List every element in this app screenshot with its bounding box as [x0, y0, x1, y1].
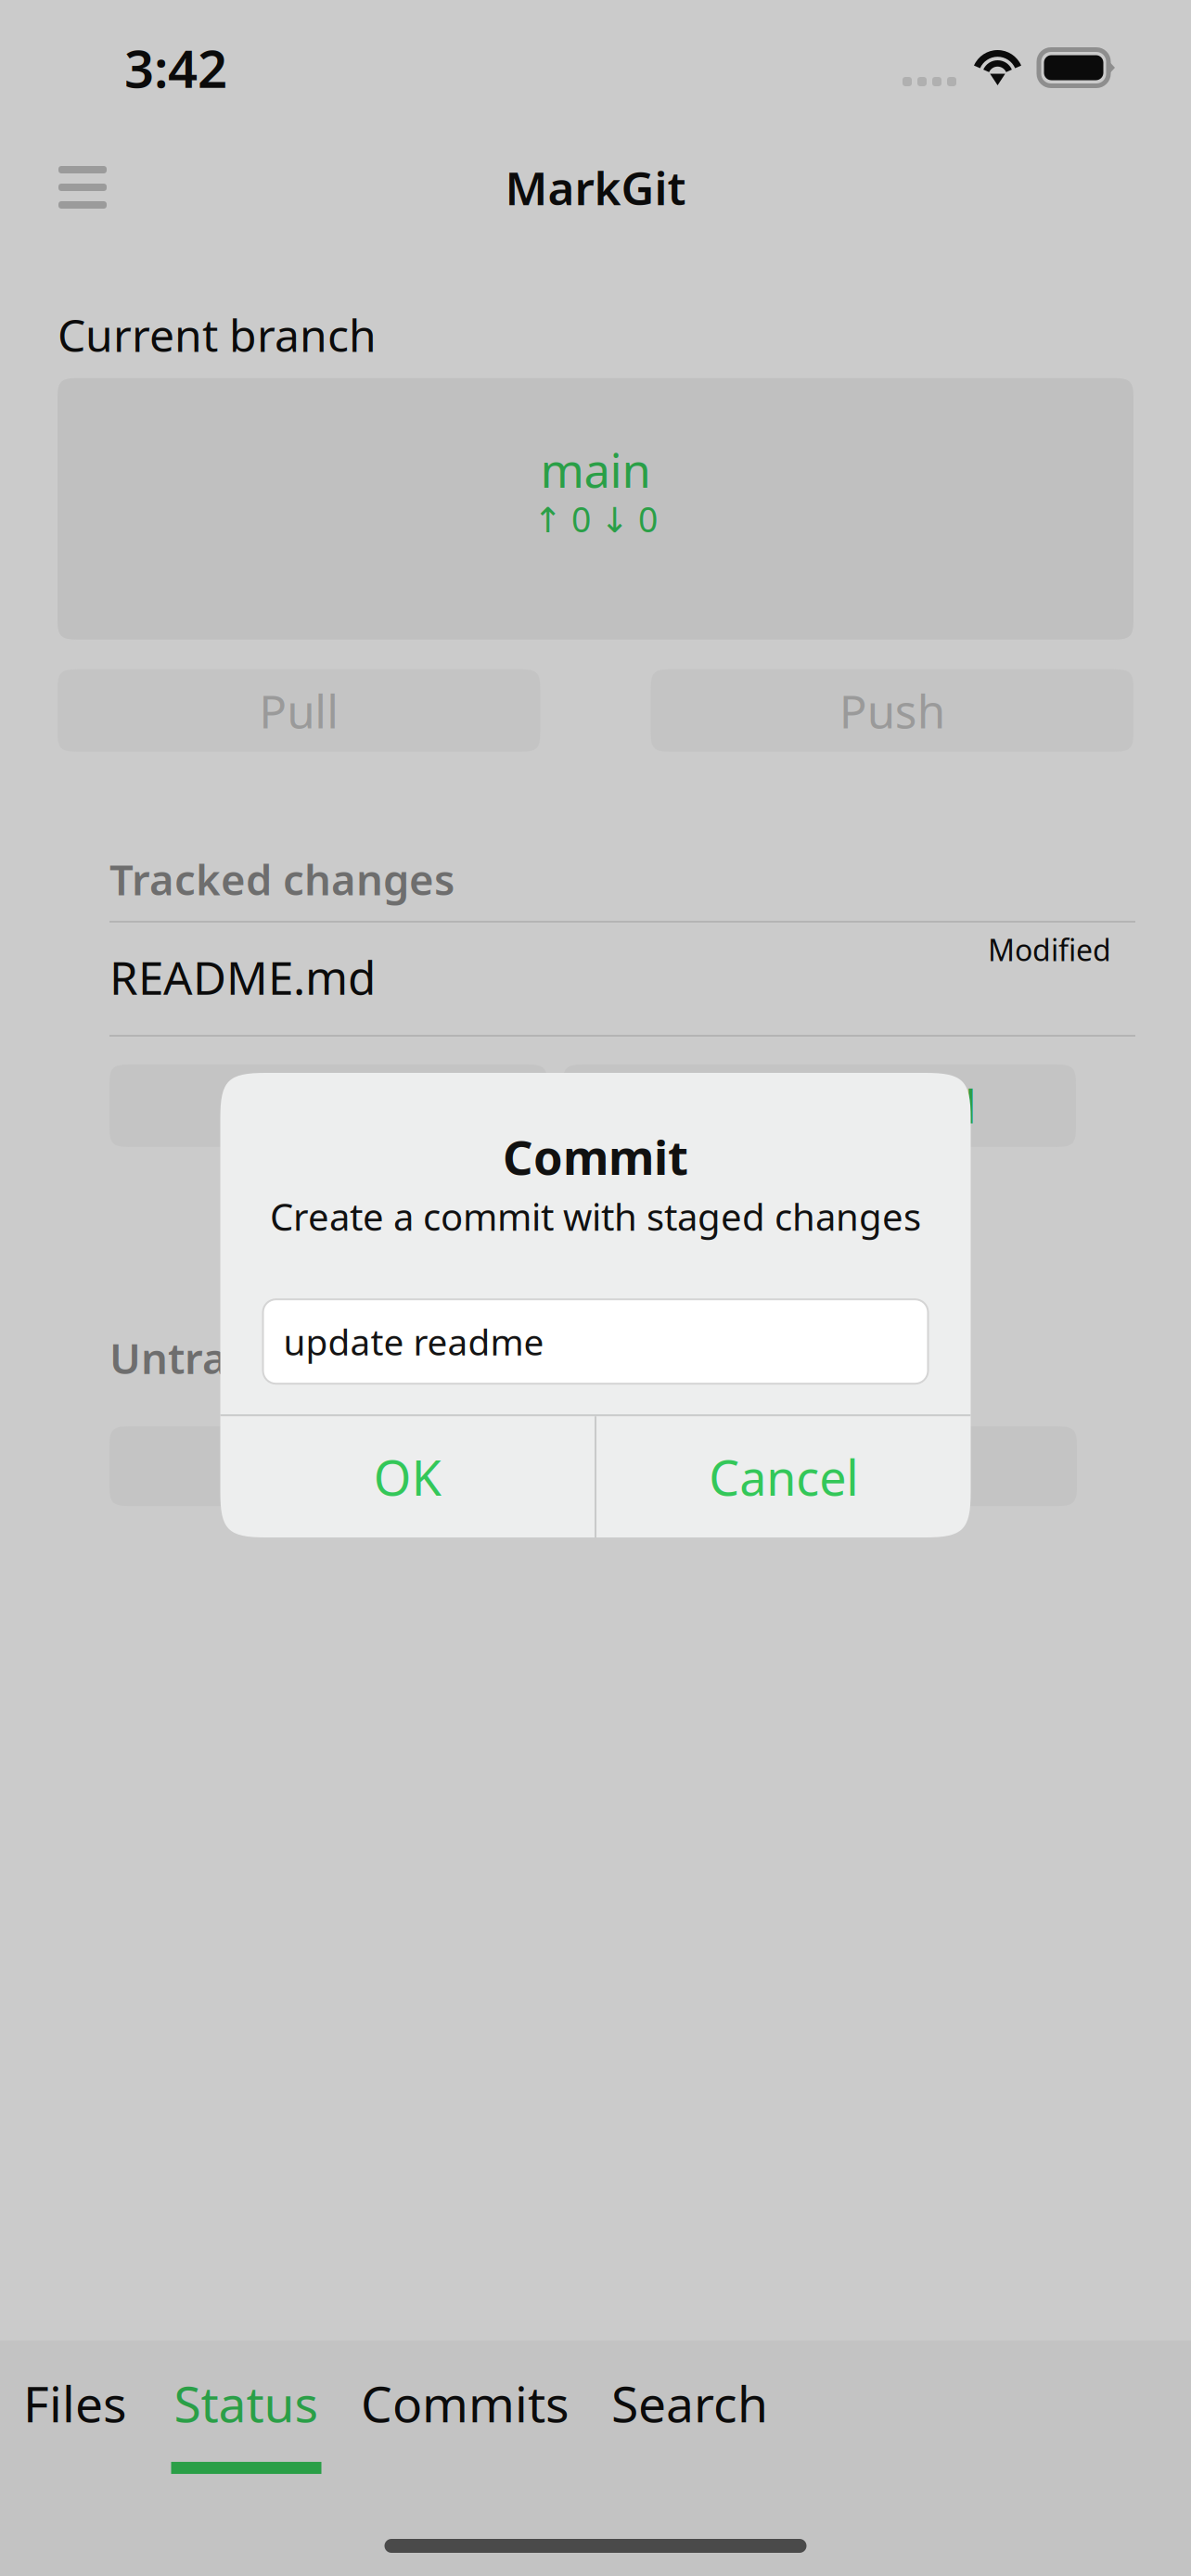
button[interactable]: main: [58, 378, 1133, 640]
staticText: ↑ 0 ↓ 0: [533, 496, 658, 542]
staticText: Files: [23, 2370, 127, 2436]
button[interactable]: Search: [588, 2340, 791, 2478]
staticText: Commits: [361, 2370, 570, 2436]
button[interactable]: Commit all: [563, 1064, 1076, 1147]
staticText: Cancel: [709, 1445, 858, 1509]
staticText: Push: [839, 680, 945, 741]
button[interactable]: Add all untracked files: [109, 1426, 1077, 1506]
staticText: OK: [374, 1445, 441, 1509]
staticText: README.md: [109, 947, 376, 1007]
staticText: MarkGit: [505, 157, 686, 218]
staticText: Create a commit with staged changes: [270, 1192, 921, 1241]
staticText: Commit all: [744, 1075, 977, 1136]
staticText: Add all untracked files: [355, 1436, 831, 1497]
button[interactable]: Modified: [109, 923, 1135, 1035]
button[interactable]: Push: [651, 669, 1133, 752]
button[interactable]: Menu: [31, 135, 134, 239]
button[interactable]: Cancel: [596, 1416, 971, 1538]
button[interactable]: OK: [220, 1416, 595, 1538]
staticText: Commit: [503, 1126, 688, 1188]
staticText: Modified: [988, 930, 1111, 969]
staticText: Pull: [259, 680, 339, 741]
staticText: 3:42: [124, 33, 227, 102]
staticText: Tracked changes: [109, 851, 455, 907]
staticText: update readme: [283, 1318, 544, 1365]
button[interactable]: Files: [0, 2340, 150, 2478]
button[interactable]: Pull: [58, 669, 540, 752]
button[interactable]: Stage all: [109, 1064, 547, 1147]
staticText: Search: [611, 2370, 768, 2436]
button[interactable]: Status: [150, 2340, 342, 2478]
staticText: main: [540, 438, 651, 501]
button[interactable]: Commits: [342, 2340, 588, 2478]
staticText: Current branch: [58, 305, 377, 364]
staticText: Status: [174, 2370, 319, 2436]
staticText: Untracked: [109, 1330, 325, 1385]
